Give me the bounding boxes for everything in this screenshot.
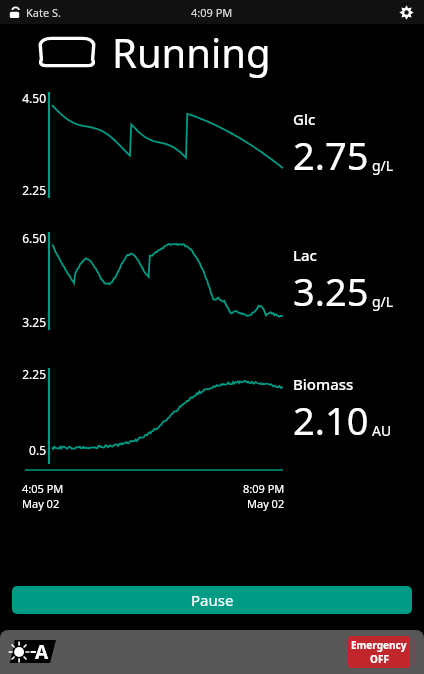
button[interactable]: Laser A status xyxy=(4,638,62,666)
staticText: 2.75 xyxy=(293,129,369,181)
staticText: May 02 xyxy=(247,496,285,511)
staticText: 3.25 xyxy=(293,265,369,317)
staticText: 2.25 xyxy=(4,182,46,198)
staticText: 4.50 xyxy=(4,90,46,106)
staticText: Kate S. xyxy=(26,5,62,20)
staticText: Pause xyxy=(191,590,234,610)
staticText: g/L xyxy=(372,292,394,311)
staticText: g/L xyxy=(372,156,394,175)
staticText: 2.25 xyxy=(4,366,46,382)
staticText: OFF xyxy=(370,652,389,666)
staticText: May 02 xyxy=(22,496,60,511)
staticText: 4:05 PM xyxy=(22,481,64,496)
staticText: Emergency xyxy=(351,638,407,652)
staticText: 2.10 xyxy=(293,394,369,446)
staticText: Biomass xyxy=(293,374,354,394)
staticText: 8:09 PM xyxy=(243,481,285,496)
staticText: Lac xyxy=(293,245,317,265)
staticText: 3.25 xyxy=(4,314,46,330)
button[interactable]: Pause xyxy=(12,586,412,614)
staticText: A xyxy=(35,639,49,665)
button[interactable]: Emergency xyxy=(348,636,410,668)
staticText: 0.5 xyxy=(4,442,46,458)
staticText: 4:09 PM xyxy=(191,5,233,20)
staticText: Running xyxy=(112,25,271,79)
staticText: Glc xyxy=(293,109,316,129)
staticText: 6.50 xyxy=(4,230,46,246)
button[interactable]: Settings xyxy=(396,2,416,22)
staticText: AU xyxy=(372,421,392,440)
